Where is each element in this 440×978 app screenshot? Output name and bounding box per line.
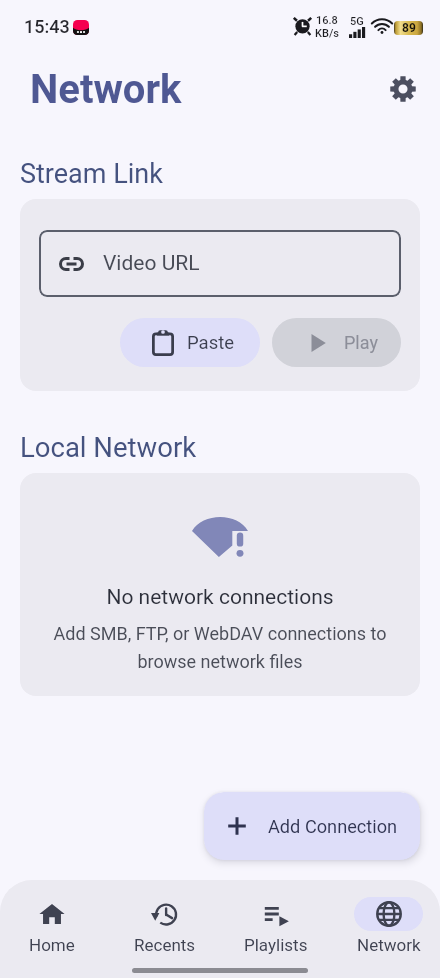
staticText: 5G bbox=[350, 15, 364, 28]
button[interactable]: Playlists bbox=[241, 897, 310, 955]
staticText: Local Network bbox=[20, 431, 197, 463]
staticText: Playlists bbox=[244, 935, 308, 955]
staticText: 16.8 bbox=[316, 14, 338, 27]
staticText: Add SMB, FTP, or WebDAV connections to b… bbox=[20, 623, 420, 673]
staticText: Home bbox=[29, 935, 75, 955]
button[interactable]: Recents bbox=[130, 897, 199, 955]
staticText: KB/s bbox=[315, 27, 339, 40]
staticText: 89 bbox=[402, 21, 416, 35]
button[interactable]: Play bbox=[272, 318, 401, 367]
staticText: Network bbox=[357, 935, 421, 955]
button[interactable]: Add Connection bbox=[204, 792, 420, 860]
staticText: Add Connection bbox=[268, 816, 398, 837]
staticText: Stream Link bbox=[20, 158, 163, 190]
button[interactable]: Settings bbox=[381, 67, 425, 111]
staticText: Play bbox=[344, 332, 378, 353]
staticText: Recents bbox=[134, 935, 196, 955]
staticText: Video URL bbox=[103, 251, 200, 276]
button[interactable]: Home bbox=[17, 897, 86, 955]
staticText: Network bbox=[30, 66, 182, 113]
staticText: No network connections bbox=[20, 585, 420, 610]
button[interactable]: Paste bbox=[120, 318, 260, 367]
button[interactable]: Video URL bbox=[39, 230, 401, 297]
staticText: 15:43 bbox=[24, 16, 70, 37]
button[interactable]: Network bbox=[354, 897, 423, 955]
staticText: Paste bbox=[187, 332, 235, 354]
